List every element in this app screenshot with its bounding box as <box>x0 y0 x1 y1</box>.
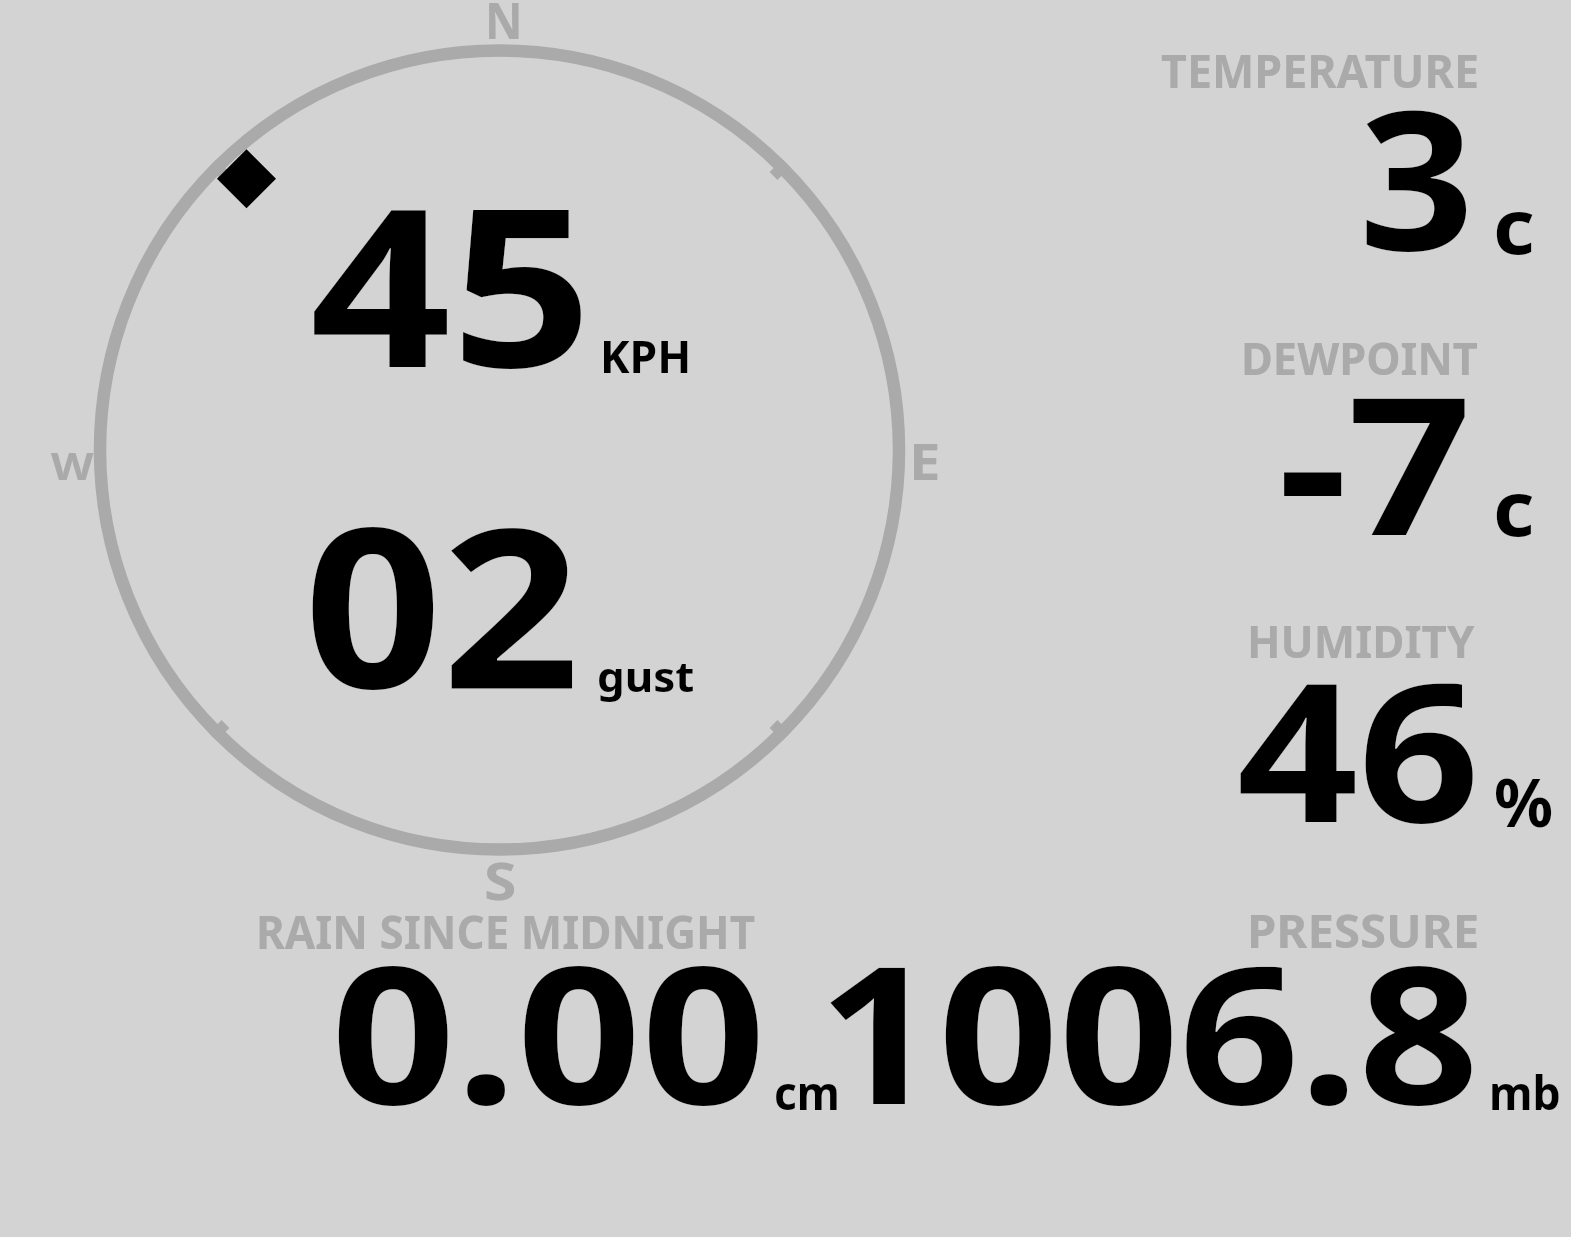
staticText: 45 <box>310 133 593 431</box>
staticText: E <box>909 427 941 495</box>
staticText: KPH <box>600 324 692 386</box>
staticText: HUMIDITY <box>1247 610 1474 672</box>
staticText: 46 <box>1237 617 1480 878</box>
staticText: W <box>51 440 94 491</box>
staticText: 1006.8 <box>818 900 1480 1159</box>
staticText: RAIN SINCE MIDNIGHT <box>256 898 756 962</box>
button[interactable]: Wind direction compass <box>0 0 1571 1237</box>
staticText: DEWPOINT <box>1241 327 1479 388</box>
staticText: -7 <box>1278 331 1472 591</box>
staticText: TEMPERATURE <box>1161 39 1480 102</box>
staticText: 02 <box>304 452 581 753</box>
staticText: mb <box>1489 1061 1561 1123</box>
staticText: c <box>1493 173 1535 277</box>
staticText: 3 <box>1359 45 1474 307</box>
staticText: c <box>1493 455 1535 558</box>
staticText: S <box>484 845 517 916</box>
staticText: 0.00 <box>331 900 767 1159</box>
staticText: % <box>1494 757 1554 846</box>
staticText: N <box>485 0 523 54</box>
staticText: gust <box>597 648 694 704</box>
staticText: cm <box>774 1061 840 1124</box>
staticText: PRESSURE <box>1247 897 1480 961</box>
